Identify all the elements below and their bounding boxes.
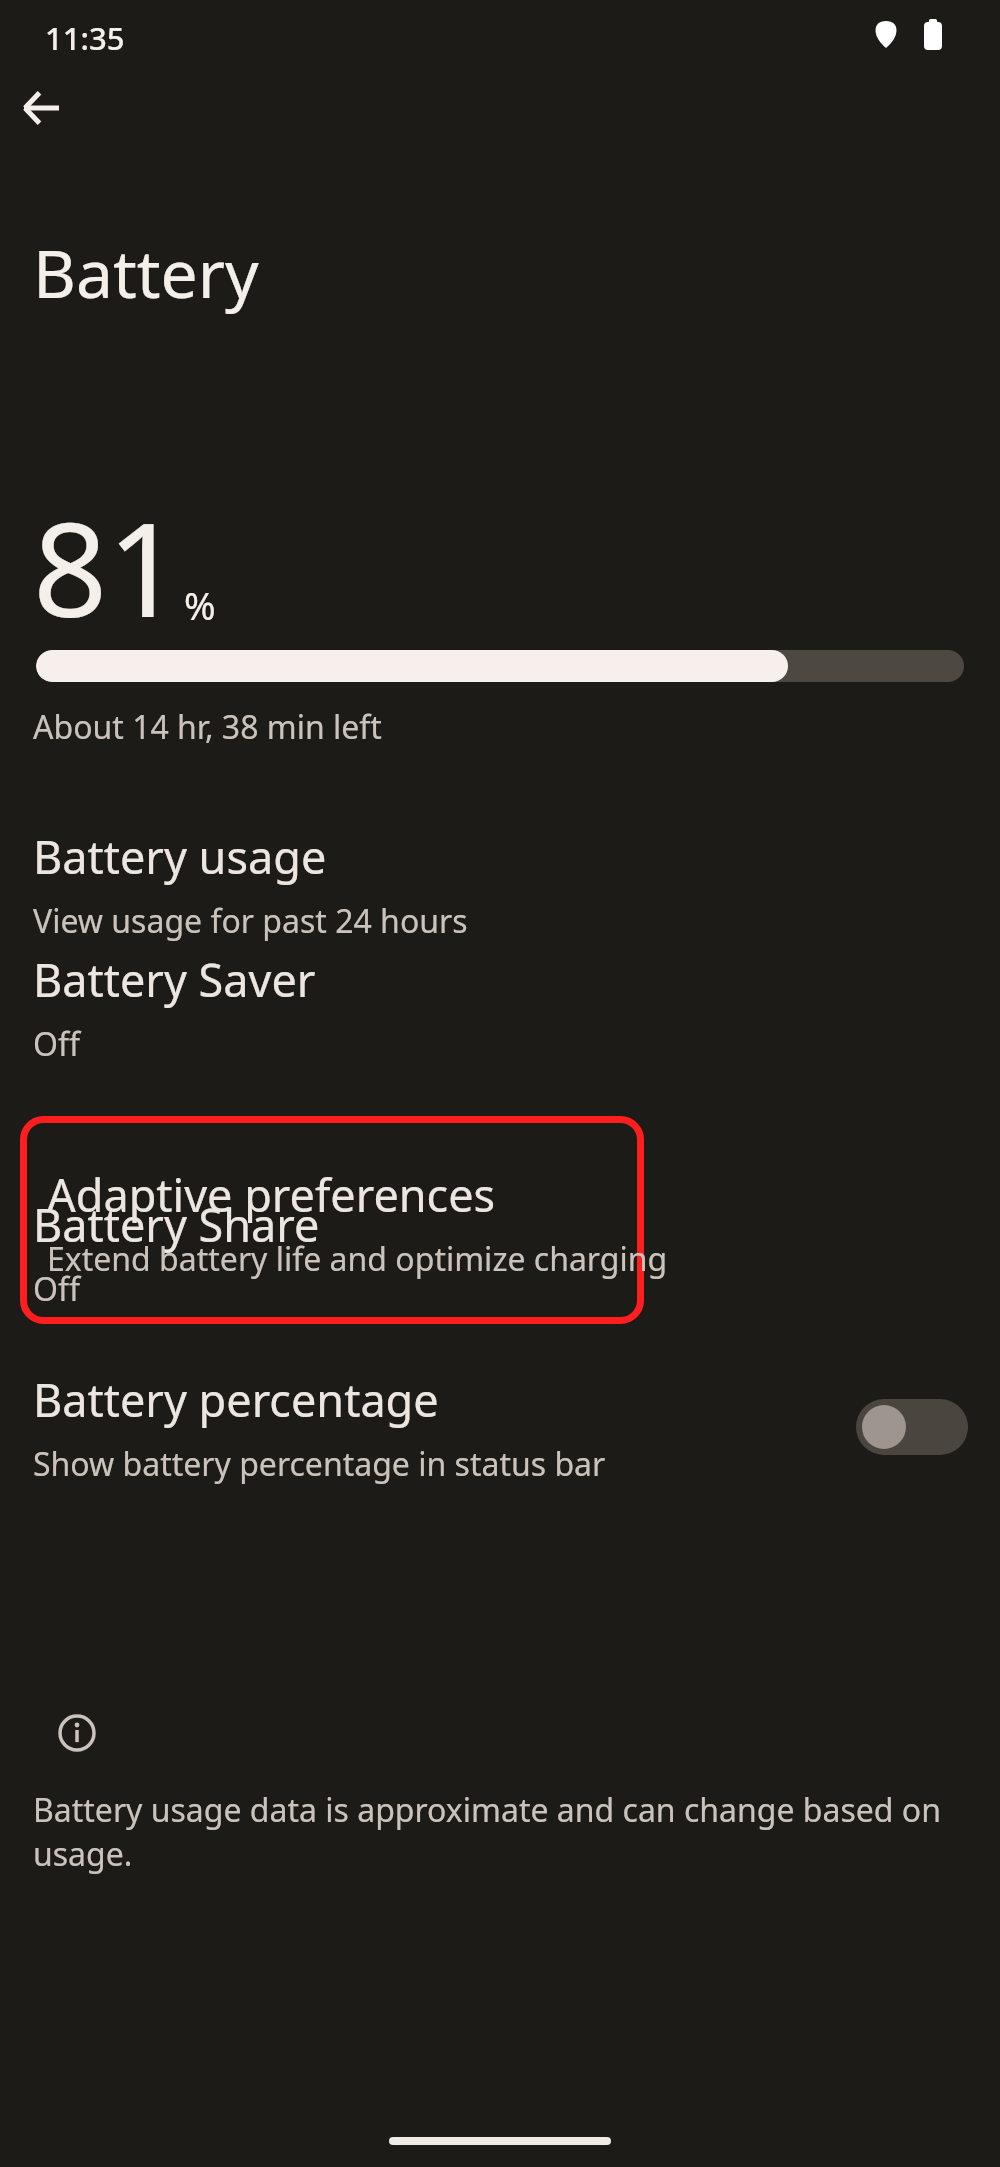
button[interactable]: Battery usage: [0, 820, 1000, 949]
staticText: Adaptive preferences: [47, 1164, 496, 1225]
staticText: Battery usage data is approximate and ca…: [33, 1788, 967, 1876]
staticText: Battery Share: [33, 1194, 320, 1255]
button[interactable]: Battery Saver: [0, 943, 1000, 1072]
button[interactable]: Back: [9, 76, 73, 140]
staticText: Extend battery life and optimize chargin…: [47, 1237, 668, 1281]
staticText: Battery: [33, 227, 259, 317]
button[interactable]: Battery percentage: [0, 1352, 1000, 1502]
button[interactable]: Adaptive preferences: [20, 1116, 644, 1324]
staticText: 81: [33, 478, 182, 655]
staticText: Off: [33, 1267, 81, 1311]
staticText: 11:35: [45, 17, 125, 59]
staticText: Battery Saver: [33, 949, 316, 1010]
staticText: Show battery percentage in status bar: [33, 1442, 606, 1486]
staticText: Off: [33, 1022, 81, 1066]
staticText: About 14 hr, 38 min left: [33, 705, 382, 749]
staticText: Battery usage: [33, 826, 327, 887]
button[interactable]: Battery Share: [0, 1188, 1000, 1317]
staticText: %: [184, 579, 216, 631]
staticText: Battery percentage: [33, 1369, 439, 1430]
staticText: View usage for past 24 hours: [33, 899, 468, 943]
